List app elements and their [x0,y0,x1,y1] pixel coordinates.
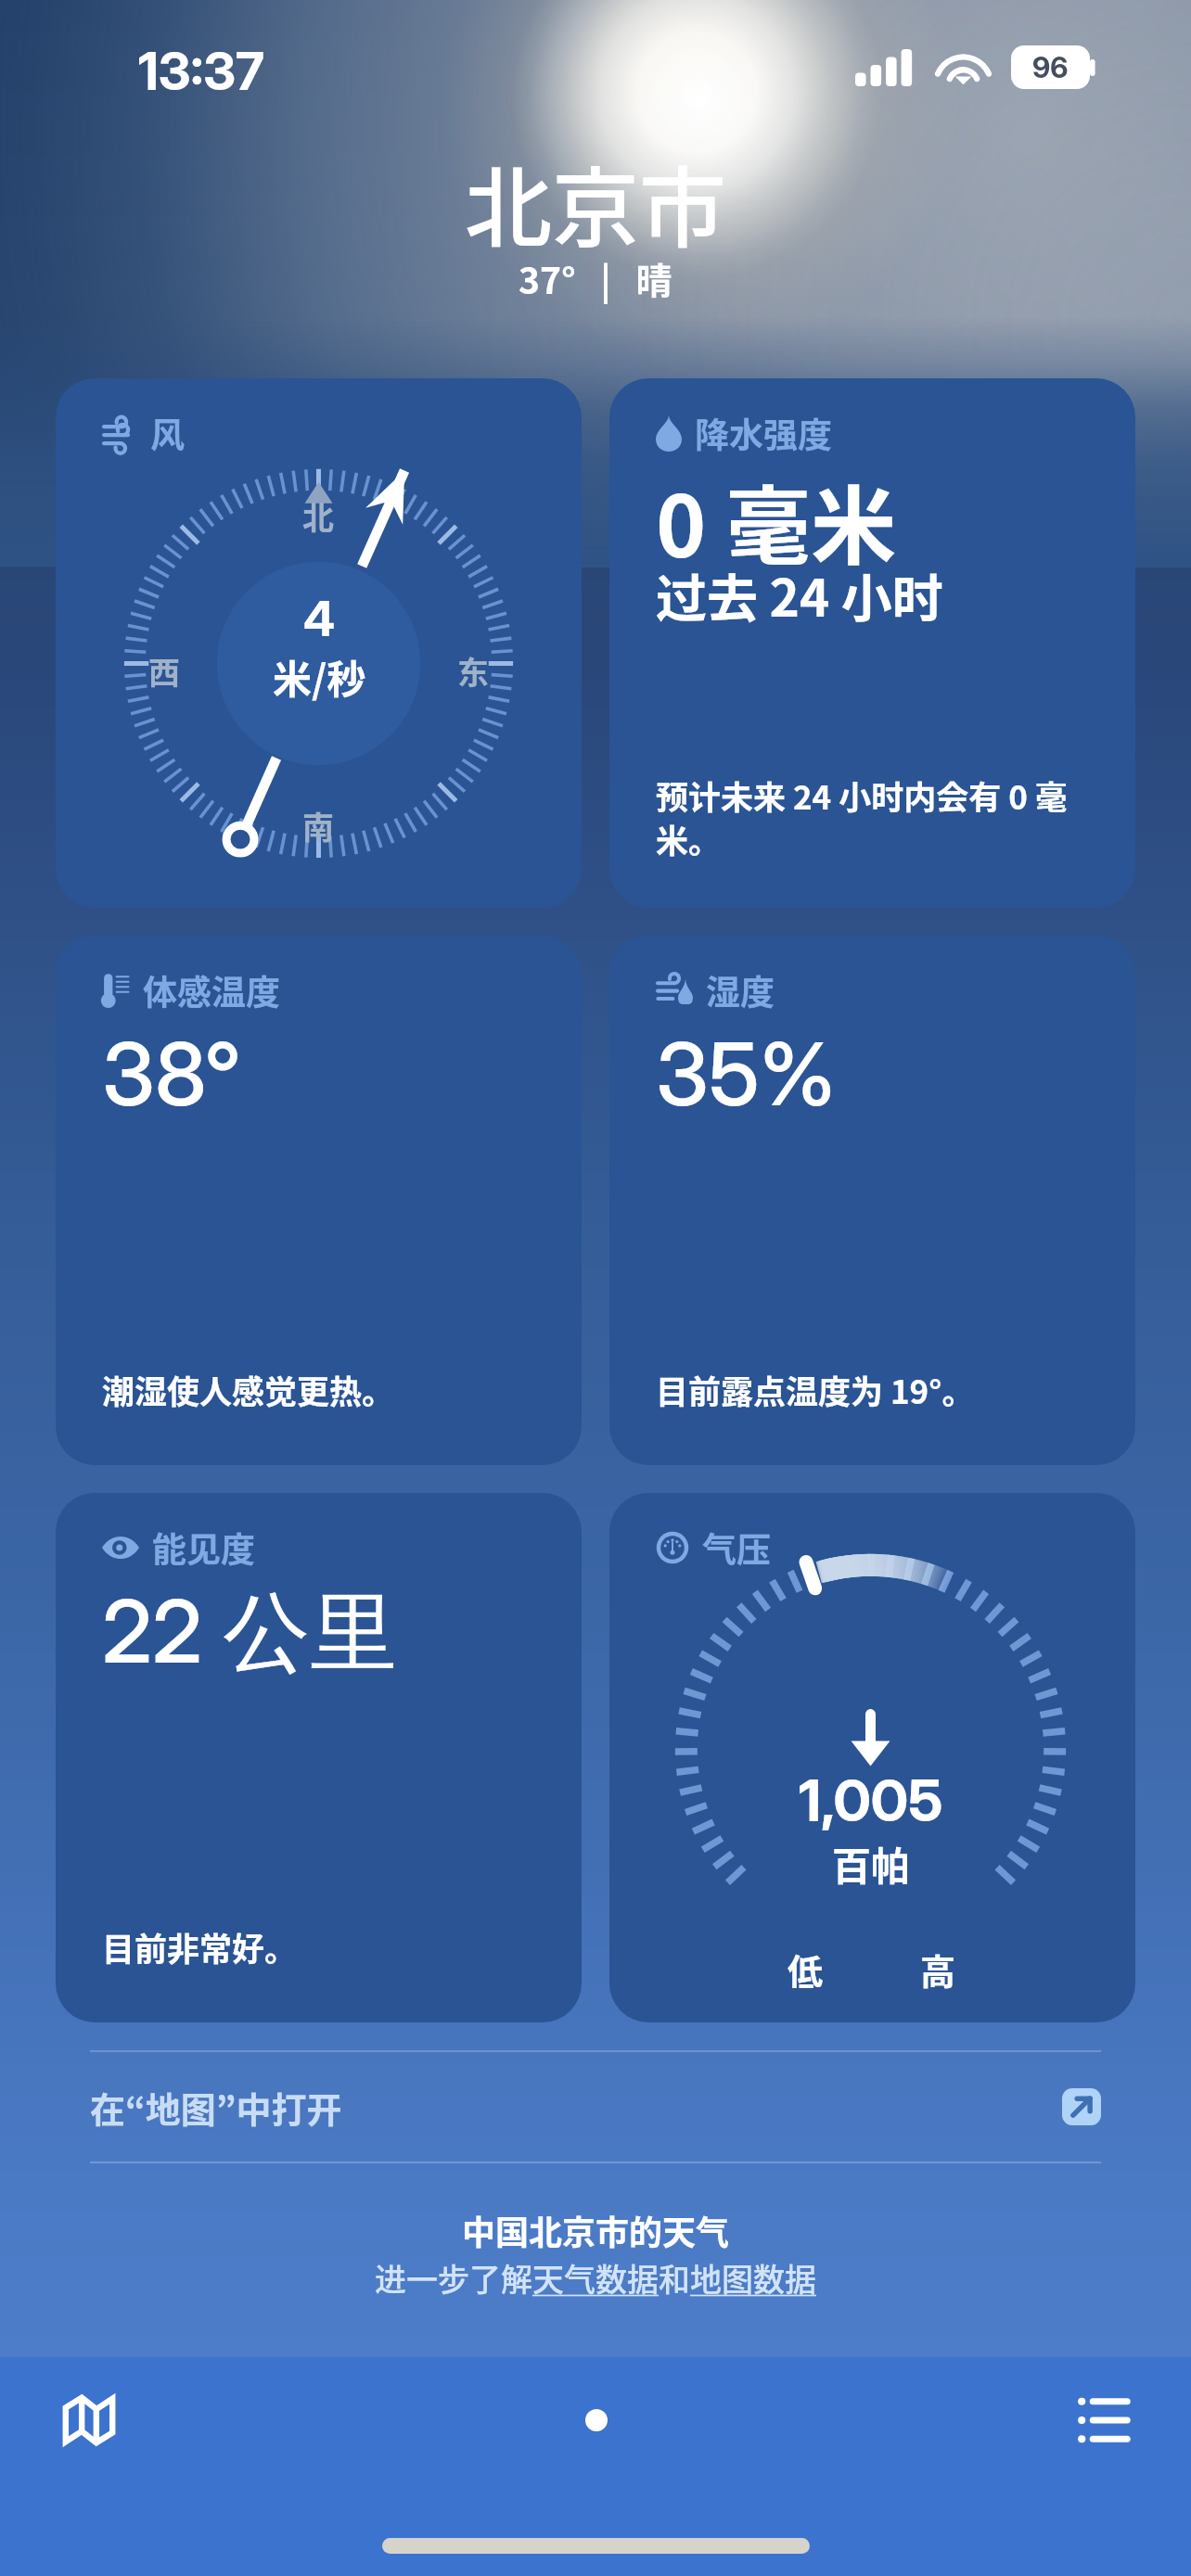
other: Wi-Fi [936,50,991,85]
staticText: 西 [148,648,180,694]
staticText: 降水强度 [695,408,832,458]
staticText: 13:37 [138,40,264,103]
staticText: 风 [150,408,185,458]
button[interactable]: 1,005 [609,1493,1135,2022]
staticText: 北 [302,493,334,539]
staticText: 96 [1032,50,1069,85]
button[interactable]: City list [1065,2381,1143,2459]
staticText: 气压 [702,1523,771,1573]
staticText: 米/秒 [273,648,366,705]
staticText: 低 [788,1944,824,1995]
staticText: 高 [920,1944,956,1995]
staticText: 38° [102,1021,242,1127]
staticText: 潮湿使人感觉更热。 [102,1366,395,1413]
staticText: 能见度 [152,1523,255,1573]
button[interactable]: Open in Maps [1062,2088,1101,2125]
staticText: 过去 24 小时 [656,557,943,631]
staticText: 在“地图”中打开 [90,2082,342,2133]
staticText: 体感温度 [143,965,280,1015]
staticText: 0 毫米 [656,458,897,581]
staticText: 22 公里 [102,1578,398,1689]
other: Cellular signal [855,49,914,86]
staticText: 南 [302,803,334,848]
staticText: 1,005 [799,1766,943,1835]
staticText: 百帕 [832,1835,911,1892]
staticText: 和 [659,2255,690,2301]
staticText: 北京市 [465,139,727,265]
button[interactable]: Map [50,2381,128,2459]
staticText: 进一步了解 [375,2255,532,2301]
staticText: 中国北京市的天气 [462,2206,730,2254]
button[interactable]: 北 [56,378,582,908]
staticText: 东 [457,648,489,694]
button[interactable]: Current location [570,2393,623,2447]
staticText: 目前非常好。 [102,1923,298,1970]
button[interactable]: 地图数据 [690,2255,816,2301]
button[interactable]: 在“地图”中打开 [90,2052,1101,2162]
staticText: 目前露点温度为 19°。 [656,1366,975,1413]
button[interactable]: 天气数据 [532,2255,659,2301]
button[interactable]: 降水强度 [609,378,1135,908]
staticText: 37° | 晴 [519,252,672,304]
button[interactable]: 能见度 [56,1493,582,2022]
staticText: 35% [656,1021,837,1127]
staticText: 预计未来 24 小时内会有 0 毫米。 [656,772,1104,862]
staticText: 4 [303,590,336,648]
button[interactable]: 体感温度 [56,936,582,1465]
button[interactable]: 湿度 [609,936,1135,1465]
staticText: 湿度 [706,965,775,1015]
